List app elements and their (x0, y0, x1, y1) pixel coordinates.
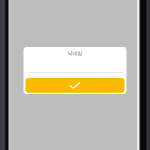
staticText: 닉네임 (67, 50, 82, 56)
button[interactable]: 확인 (25, 78, 124, 93)
